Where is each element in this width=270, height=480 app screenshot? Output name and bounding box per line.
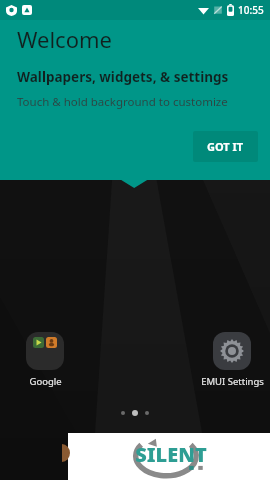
staticText: SILENT [135,441,207,468]
staticText: Touch & hold background to customize [17,94,228,110]
staticText: Wallpapers, widgets, & settings [17,68,229,86]
button[interactable]: GOT IT [193,131,258,162]
staticText: 10:55 [238,3,264,17]
staticText: EMUI Settings [201,375,264,388]
button[interactable]: EMUI Settings [198,330,266,388]
staticText: GOT IT [207,139,244,154]
staticText: Google [29,375,62,388]
button[interactable]: Google [11,330,79,388]
other: EMUI Settings [213,332,251,370]
staticText: Welcome [17,24,112,54]
